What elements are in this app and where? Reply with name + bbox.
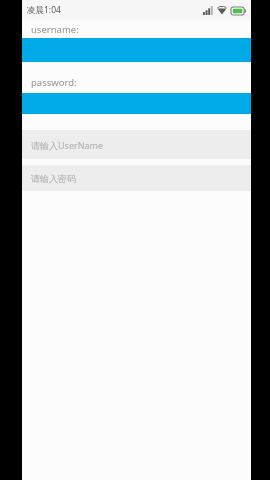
staticText: 凌晨1:04 bbox=[27, 4, 61, 16]
button[interactable]: 请输入UserName bbox=[22, 130, 251, 159]
staticText: username: bbox=[31, 23, 79, 36]
button[interactable]: 请输入密码 bbox=[22, 165, 251, 191]
staticText: 请输入密码 bbox=[31, 173, 76, 184]
staticText: 请输入UserName bbox=[31, 139, 104, 151]
staticText: password: bbox=[31, 76, 77, 89]
